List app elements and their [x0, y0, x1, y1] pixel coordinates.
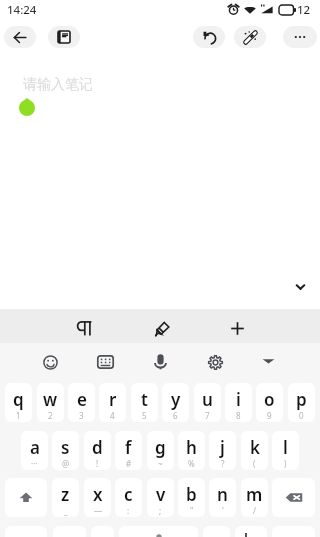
button[interactable]: AI assistant — [234, 26, 266, 48]
button[interactable]: Backspace — [272, 478, 315, 517]
staticText: r — [109, 388, 117, 411]
staticText: 9 — [267, 410, 272, 421]
staticText: 2 — [48, 410, 53, 421]
button[interactable]: d — [84, 431, 111, 470]
staticText: z — [61, 483, 70, 506]
button[interactable]: Back — [4, 26, 36, 48]
button[interactable]: m — [241, 478, 268, 517]
staticText: a — [30, 436, 40, 459]
button[interactable]: Notebook — [48, 26, 80, 48]
button[interactable]: Collapse toolbar — [288, 275, 312, 299]
staticText: : — [127, 505, 130, 516]
button[interactable]: z — [52, 478, 79, 517]
staticText: 0 — [299, 410, 304, 421]
button[interactable]: o — [256, 383, 283, 422]
button[interactable]: Space — [119, 526, 198, 537]
staticText: ; — [159, 505, 162, 516]
staticText: ( — [253, 458, 256, 469]
staticText: ' — [222, 505, 224, 516]
staticText: 14:24 — [7, 2, 37, 18]
staticText: @ — [62, 458, 70, 469]
staticText: % — [188, 458, 195, 469]
button[interactable]: Keyboard settings — [193, 347, 237, 377]
staticText: t — [141, 388, 148, 411]
button[interactable]: Voice input — [138, 346, 182, 376]
button[interactable]: c — [115, 478, 142, 517]
button[interactable]: a — [21, 431, 48, 470]
staticText: — — [94, 505, 102, 516]
staticText: p — [296, 388, 307, 411]
button[interactable]: q — [5, 383, 32, 422]
staticText: ··· — [31, 458, 38, 469]
button[interactable]: j — [209, 431, 236, 470]
staticText: 5 — [142, 410, 147, 421]
staticText: 6 — [173, 410, 178, 421]
button[interactable]: e — [68, 383, 95, 422]
staticText: j — [220, 436, 225, 459]
button[interactable]: Insert — [215, 313, 259, 343]
staticText: s — [61, 436, 70, 459]
button[interactable]: Highlighter — [140, 313, 184, 343]
staticText: ? — [221, 458, 225, 469]
staticText: q — [13, 388, 24, 411]
staticText: v — [156, 483, 166, 506]
button[interactable]: i — [225, 383, 252, 422]
staticText: u — [202, 388, 213, 411]
button[interactable]: r — [99, 383, 126, 422]
staticText: n — [217, 483, 228, 506]
staticText: 8 — [236, 410, 241, 421]
button[interactable]: g — [147, 431, 174, 470]
button[interactable]: y — [162, 383, 189, 422]
staticText: m — [246, 483, 263, 506]
staticText: f — [125, 436, 132, 459]
staticText: 7 — [205, 410, 210, 421]
staticText: o — [264, 388, 275, 411]
staticText: d — [92, 436, 103, 459]
staticText: 4 — [110, 410, 115, 421]
staticText: # — [126, 458, 132, 469]
button[interactable]: h — [178, 431, 205, 470]
staticText: 1 — [16, 410, 21, 421]
button[interactable]: Undo — [193, 26, 225, 48]
button[interactable]: More options — [283, 26, 317, 48]
staticText: w — [43, 388, 58, 411]
button[interactable]: w — [37, 383, 64, 422]
staticText: x — [93, 483, 103, 506]
staticText: ) — [284, 458, 287, 469]
button[interactable]: f — [115, 431, 142, 470]
button[interactable]: v — [147, 478, 174, 517]
button[interactable]: t — [131, 383, 158, 422]
staticText: h — [186, 436, 197, 459]
button[interactable]: n — [209, 478, 236, 517]
staticText: y — [171, 388, 181, 411]
staticText: i — [236, 388, 241, 411]
button[interactable]: x — [84, 478, 111, 517]
staticText: ! — [96, 458, 99, 469]
staticText: 3 — [79, 410, 84, 421]
staticText: k — [250, 436, 260, 459]
button[interactable]: Paragraph style — [62, 313, 106, 343]
button[interactable]: p — [288, 383, 315, 422]
button[interactable]: Emoji — [235, 526, 267, 537]
staticText: _ — [64, 505, 68, 516]
button[interactable]: b — [178, 478, 205, 517]
button[interactable]: Emoji — [28, 347, 72, 377]
button[interactable]: l — [272, 431, 299, 470]
button[interactable]: Shift — [5, 478, 47, 517]
staticText: g — [155, 436, 166, 459]
staticText: b — [186, 483, 197, 506]
button[interactable]: s — [52, 431, 79, 470]
staticText: / — [253, 505, 256, 516]
button[interactable]: Hide keyboard — [246, 346, 290, 376]
button[interactable]: k — [241, 431, 268, 470]
button[interactable]: Keyboard layout — [83, 347, 127, 377]
staticText: l — [283, 436, 288, 459]
staticText: 请输入笔记 — [23, 76, 93, 94]
button[interactable]: u — [194, 383, 221, 422]
